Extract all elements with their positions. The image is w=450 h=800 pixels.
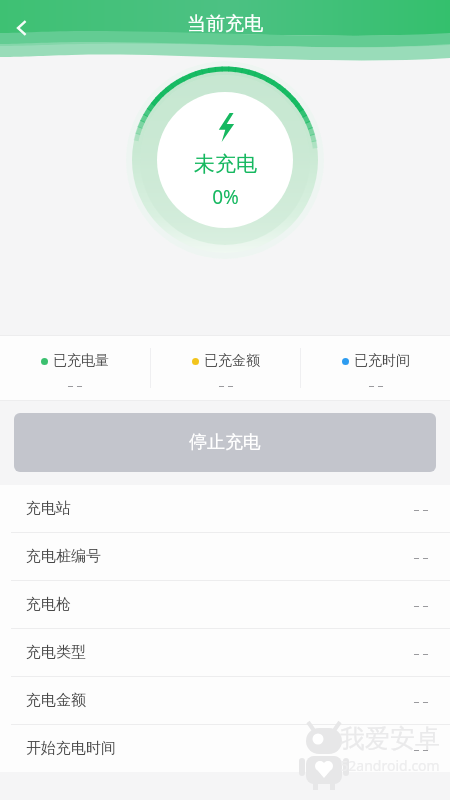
staticText: – – bbox=[368, 377, 384, 393]
staticText: – – bbox=[67, 377, 83, 393]
button[interactable]: 已充电量 bbox=[0, 335, 150, 393]
button[interactable]: 已充金额 bbox=[151, 335, 300, 393]
staticText: 已充电量 bbox=[53, 352, 109, 370]
button[interactable]: 已充时间 bbox=[301, 335, 450, 393]
button[interactable]: Back bbox=[2, 8, 42, 48]
staticText: – – bbox=[413, 741, 429, 757]
staticText: 充电类型 bbox=[26, 643, 86, 662]
staticText: 已充金额 bbox=[204, 352, 260, 370]
staticText: – – bbox=[413, 645, 429, 661]
button[interactable]: 充电枪 bbox=[0, 581, 450, 629]
button[interactable]: 开始充电时间 bbox=[0, 725, 450, 772]
staticText: 充电枪 bbox=[26, 595, 71, 614]
staticText: 52android.com bbox=[340, 756, 440, 775]
staticText: 充电站 bbox=[26, 499, 71, 518]
button[interactable]: 充电桩编号 bbox=[0, 533, 450, 581]
staticText: 0% bbox=[212, 184, 239, 210]
staticText: 充电金额 bbox=[26, 691, 86, 710]
button[interactable]: 充电站 bbox=[0, 485, 450, 533]
staticText: – – bbox=[413, 501, 429, 517]
staticText: 充电桩编号 bbox=[26, 547, 101, 566]
button[interactable]: 充电类型 bbox=[0, 629, 450, 677]
button[interactable]: 充电金额 bbox=[0, 677, 450, 725]
staticText: 已充时间 bbox=[354, 352, 410, 370]
staticText: 当前充电 bbox=[187, 12, 263, 36]
staticText: 未充电 bbox=[194, 151, 257, 177]
staticText: 开始充电时间 bbox=[26, 739, 116, 758]
staticText: – – bbox=[413, 693, 429, 709]
staticText: – – bbox=[413, 549, 429, 565]
button[interactable]: 停止充电 bbox=[14, 413, 436, 472]
staticText: 停止充电 bbox=[189, 431, 261, 454]
staticText: 我爱安卓 bbox=[340, 723, 440, 754]
staticText: – – bbox=[413, 597, 429, 613]
staticText: – – bbox=[218, 377, 234, 393]
